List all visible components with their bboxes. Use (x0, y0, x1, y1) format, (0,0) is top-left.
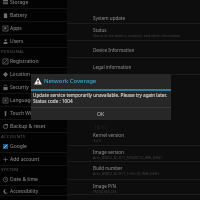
button[interactable]: Security (0, 81, 67, 94)
staticText: Location (10, 71, 31, 78)
staticText: Status (93, 27, 107, 33)
button[interactable]: Registration (0, 55, 67, 68)
staticText: Network Coverage (44, 77, 97, 85)
staticText: SYSTEM (1, 166, 19, 172)
staticText: Storage (10, 0, 29, 6)
staticText: Acer_AV052_A1-811_1.062.00_WW_GEN1 (93, 171, 160, 176)
staticText: Add account (10, 156, 40, 163)
staticText: Kernel version (93, 132, 124, 138)
staticText: FM.NLXA0.00E (93, 189, 117, 194)
button[interactable]: Status (67, 24, 200, 41)
staticText: Acer_AV052_A1-811_RV02RC12_WW_GEN1 (93, 155, 163, 160)
staticText: Touch Wiz (10, 110, 34, 117)
button[interactable]: Language (0, 94, 67, 107)
staticText: PERSONAL (1, 48, 25, 54)
staticText: Update service temporarily unavailable. … (33, 92, 167, 98)
button[interactable]: Legal information (67, 58, 200, 75)
button[interactable]: Users (0, 35, 67, 48)
staticText: Legal information (93, 64, 132, 70)
staticText: Device Information (93, 47, 135, 53)
button[interactable]: Touch Wiz (0, 107, 67, 120)
staticText: Date & time (10, 176, 38, 183)
staticText: Language (10, 97, 34, 104)
button[interactable]: Location (0, 68, 67, 81)
button[interactable]: Accessibility (0, 186, 67, 196)
button[interactable]: Device Information (67, 41, 200, 58)
button[interactable]: Date & time (0, 173, 67, 186)
button[interactable]: Google (0, 140, 67, 153)
staticText: OK (97, 110, 105, 117)
button[interactable]: Build number (67, 162, 200, 180)
staticText: Accessibility (10, 188, 39, 195)
button[interactable]: Image version (67, 146, 200, 162)
staticText: Registration (10, 58, 39, 65)
button[interactable]: Kernel version (67, 129, 200, 146)
button[interactable]: Battery (0, 9, 67, 22)
button[interactable]: Storage (0, 0, 67, 9)
button[interactable]: System update (67, 11, 200, 24)
staticText: Battery (10, 12, 28, 19)
staticText: Users (10, 38, 24, 45)
button[interactable]: Apps (0, 22, 67, 35)
button[interactable]: Backup & reset (0, 120, 67, 133)
staticText: Status of the battery, network, and othe… (93, 33, 181, 38)
other: Warning (34, 77, 42, 85)
staticText: Image version (93, 149, 124, 155)
staticText: Build number (93, 165, 123, 171)
staticText: 3.4.5 (93, 138, 101, 143)
button[interactable]: OK (31, 107, 171, 120)
staticText: Backup & reset (10, 123, 46, 130)
staticText: ACCOUNTS (1, 133, 26, 139)
button[interactable]: Add account (0, 153, 67, 166)
staticText: System update (93, 15, 126, 21)
staticText: Security (10, 84, 29, 91)
staticText: Google (10, 143, 27, 150)
staticText: Apps (10, 25, 22, 32)
staticText: Status code : 1004 (33, 98, 73, 104)
staticText: 16:11 (94, 123, 108, 130)
button[interactable]: Image P/N (67, 180, 200, 195)
staticText: Image P/N (93, 183, 117, 189)
